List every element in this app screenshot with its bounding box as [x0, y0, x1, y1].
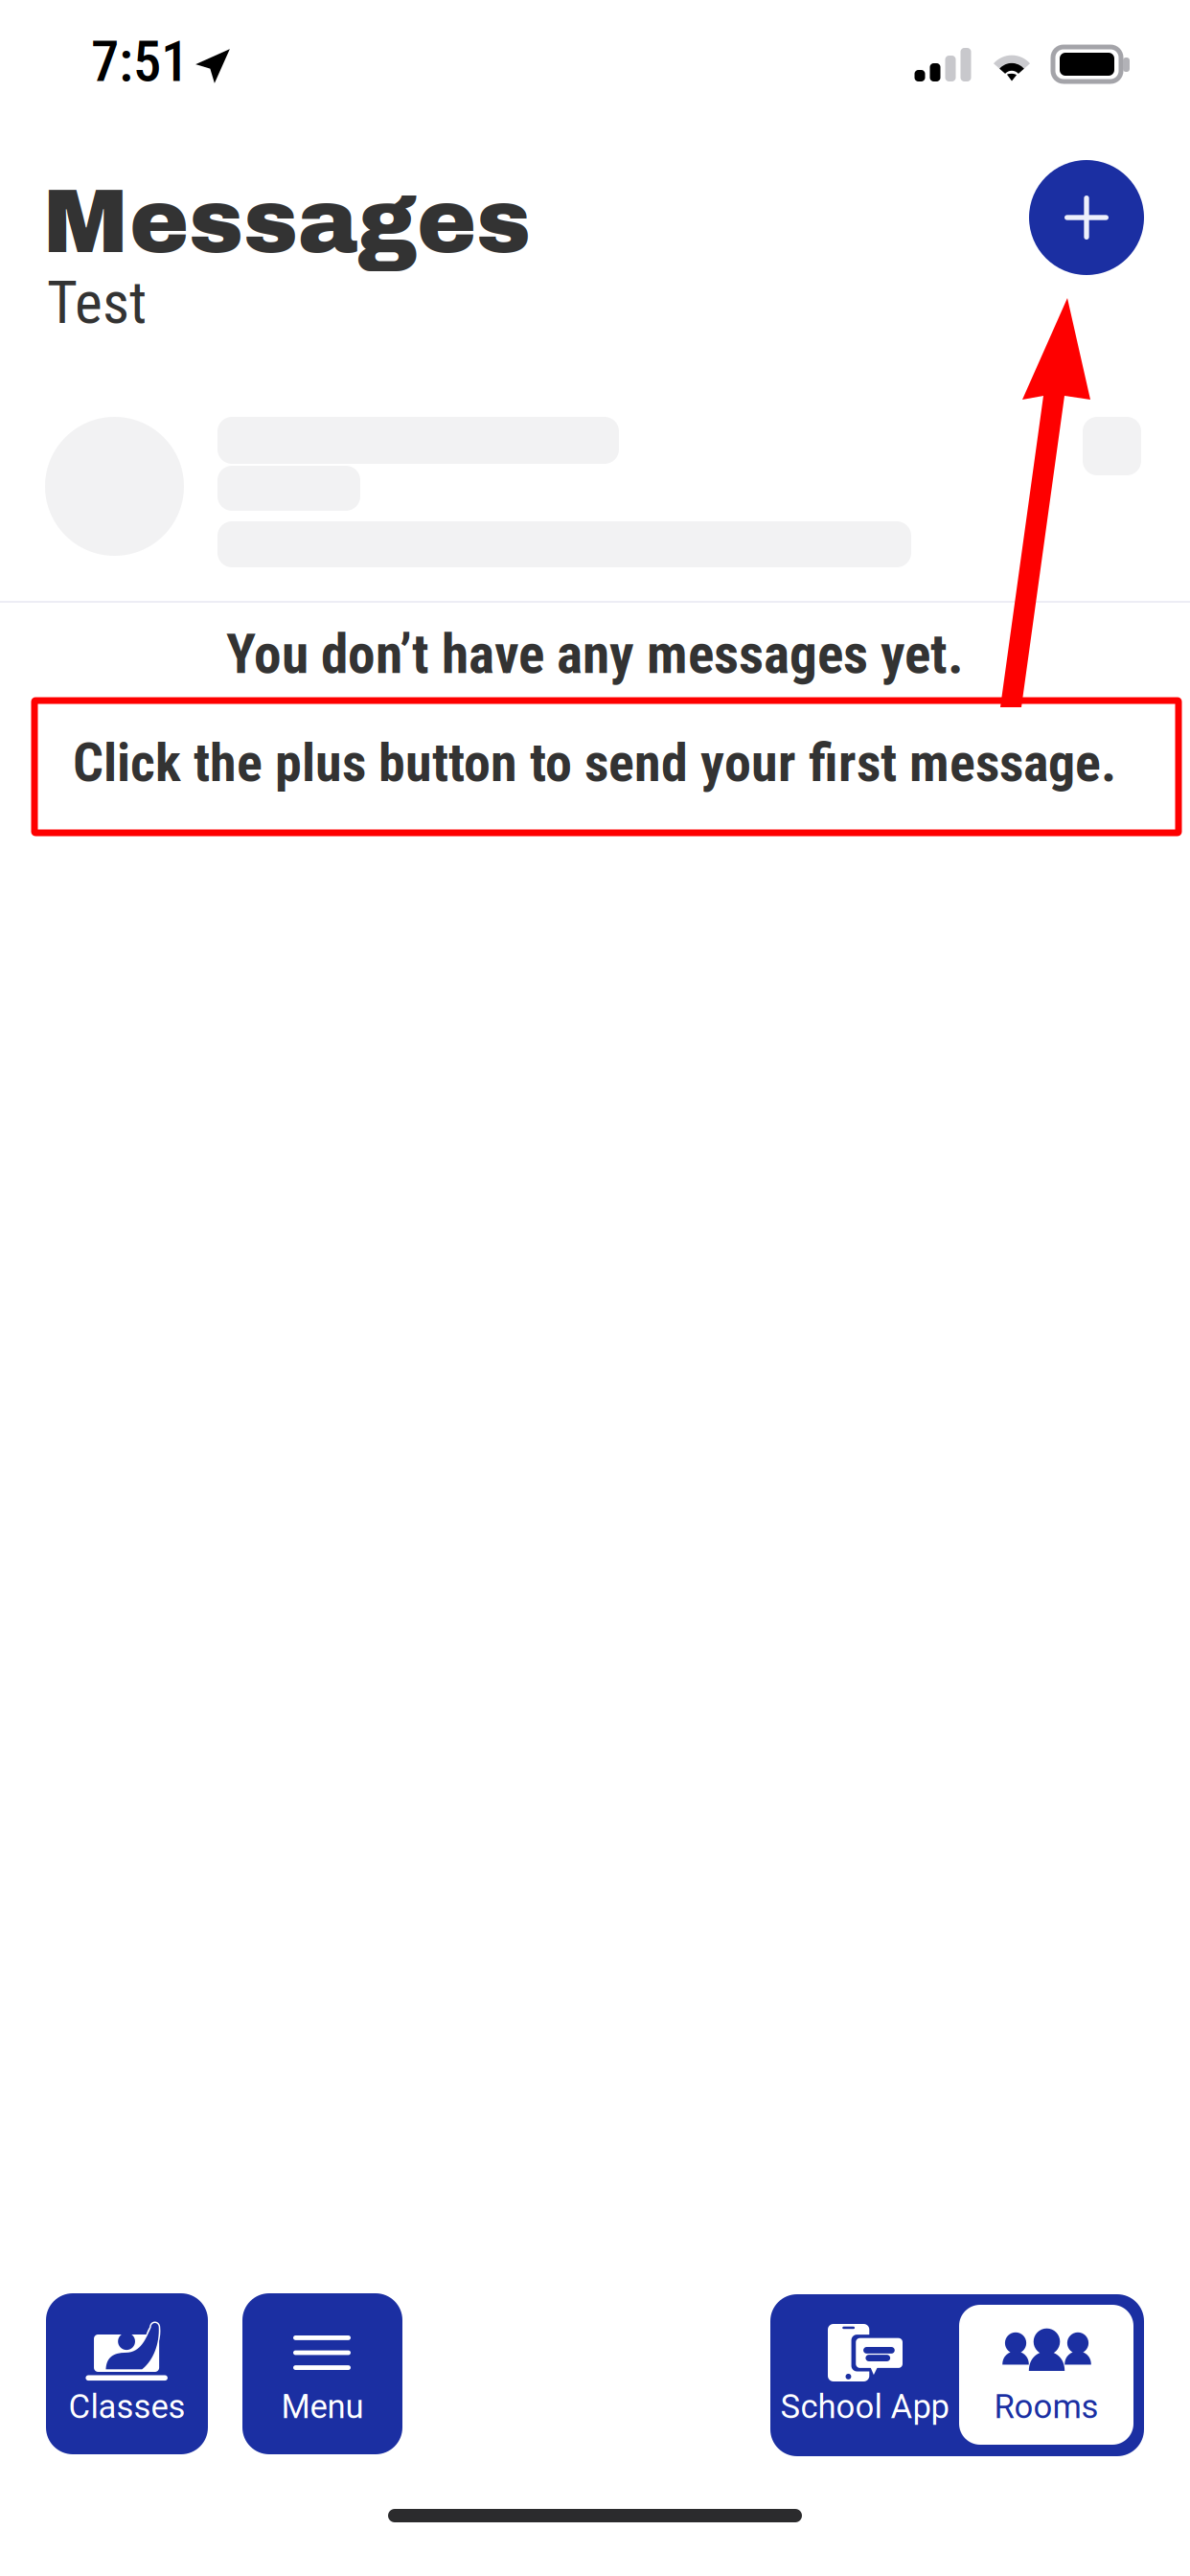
staticText: School App — [780, 2387, 949, 2426]
staticText: Messages — [42, 173, 531, 271]
button[interactable]: Rooms — [959, 2305, 1133, 2445]
button[interactable]: Classes — [46, 2293, 208, 2454]
staticText: Classes — [69, 2387, 185, 2426]
staticText: Click the plus button to send your first… — [73, 731, 1116, 794]
staticText: Rooms — [994, 2387, 1098, 2426]
button[interactable]: Menu — [242, 2293, 402, 2454]
staticText: You don’t have any messages yet. — [226, 622, 964, 686]
button[interactable]: School App — [770, 2294, 959, 2456]
staticText: Menu — [281, 2387, 364, 2426]
staticText: 7:51 — [91, 29, 189, 95]
button[interactable]: New message — [1029, 160, 1144, 275]
staticText: Test — [47, 268, 147, 337]
